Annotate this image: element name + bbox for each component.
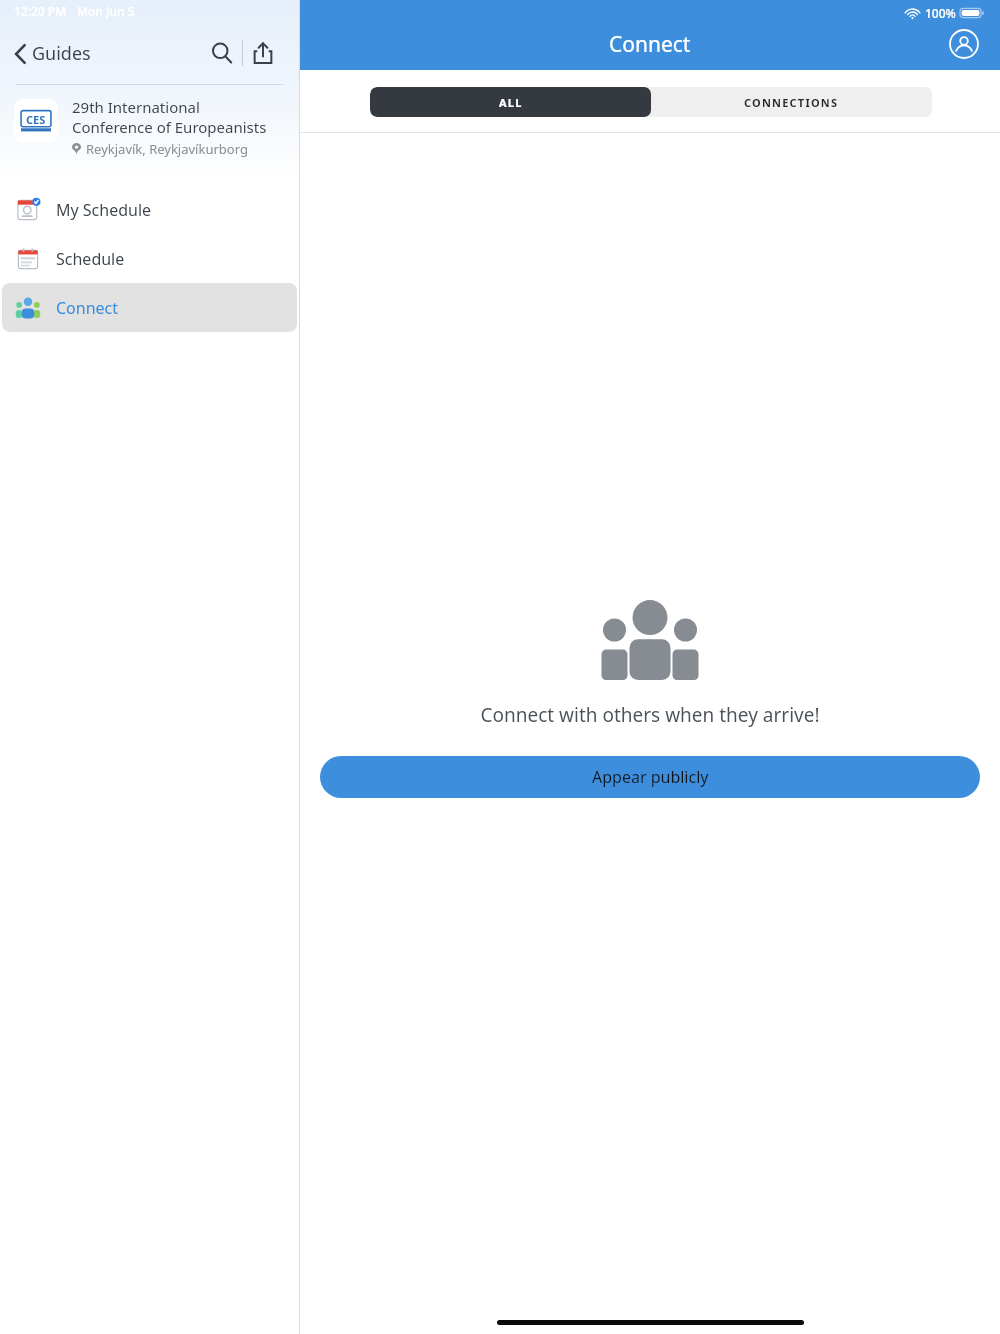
button[interactable]: My Schedule bbox=[2, 185, 297, 234]
button[interactable]: Share bbox=[243, 33, 283, 73]
staticText: Mon Jun 5 bbox=[77, 3, 135, 19]
staticText: Schedule bbox=[56, 248, 125, 270]
staticText: CONNECTIONS bbox=[744, 95, 839, 110]
button[interactable]: Appear publicly bbox=[320, 756, 980, 798]
button[interactable]: Schedule bbox=[2, 234, 297, 283]
staticText: Guides bbox=[32, 41, 91, 66]
button[interactable]: Connect bbox=[2, 283, 297, 332]
staticText: Reykjavík, Reykjavíkurborg bbox=[86, 140, 248, 158]
button[interactable]: CES bbox=[0, 85, 299, 175]
button[interactable]: Guides bbox=[10, 37, 95, 70]
staticText: 29th International bbox=[72, 97, 200, 117]
staticText: 100% bbox=[925, 5, 956, 21]
button[interactable]: Account bbox=[942, 22, 986, 66]
button[interactable]: CONNECTIONS bbox=[651, 87, 932, 117]
staticText: Connect bbox=[609, 30, 691, 59]
staticText: 12:20 PM bbox=[14, 3, 67, 19]
staticText: ALL bbox=[499, 95, 523, 110]
button[interactable]: ALL bbox=[370, 87, 651, 117]
staticText: CES bbox=[26, 112, 46, 127]
staticText: Connect bbox=[56, 297, 119, 319]
staticText: Conference of Europeanists bbox=[72, 117, 267, 137]
button[interactable]: Search bbox=[202, 33, 242, 73]
staticText: Connect with others when they arrive! bbox=[480, 702, 820, 728]
staticText: My Schedule bbox=[56, 199, 152, 221]
staticText: Appear publicly bbox=[592, 766, 709, 788]
